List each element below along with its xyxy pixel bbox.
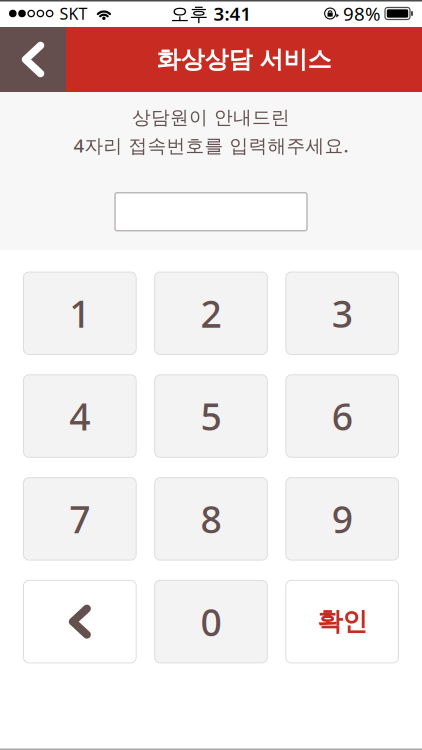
staticText: 8 bbox=[200, 494, 221, 544]
staticText: 4 bbox=[69, 391, 90, 441]
staticText: 상담원이 안내드린 bbox=[132, 106, 290, 129]
staticText: 오후 3:41 bbox=[170, 1, 251, 26]
staticText: SKT bbox=[59, 3, 87, 24]
button[interactable]: 1 bbox=[23, 272, 136, 354]
button[interactable]: Delete bbox=[23, 580, 136, 663]
staticText: 확인 bbox=[317, 606, 367, 637]
staticText: 1 bbox=[69, 288, 90, 338]
button[interactable]: 2 bbox=[155, 272, 267, 354]
button[interactable]: Back bbox=[0, 27, 66, 92]
staticText: 5 bbox=[200, 391, 221, 441]
button[interactable]: 0 bbox=[155, 580, 267, 663]
button[interactable]: 4 bbox=[23, 375, 136, 457]
staticText: 98% bbox=[343, 1, 381, 26]
button[interactable]: 8 bbox=[155, 478, 267, 560]
button[interactable]: 확인 bbox=[286, 580, 398, 663]
button[interactable]: 5 bbox=[155, 375, 267, 457]
staticText: 7 bbox=[69, 494, 90, 544]
button[interactable]: 3 bbox=[286, 272, 398, 354]
button[interactable]: 7 bbox=[23, 478, 136, 560]
staticText: 0 bbox=[200, 597, 221, 646]
staticText: 2 bbox=[200, 288, 221, 338]
button[interactable]: 6 bbox=[286, 375, 398, 457]
staticText: 3 bbox=[332, 288, 353, 338]
staticText: 9 bbox=[332, 494, 353, 544]
staticText: 4자리 접속번호를 입력해주세요. bbox=[73, 133, 348, 158]
staticText: 화상상담 서비스 bbox=[156, 45, 331, 74]
staticText: 6 bbox=[332, 391, 353, 441]
button[interactable]: 9 bbox=[286, 478, 398, 560]
